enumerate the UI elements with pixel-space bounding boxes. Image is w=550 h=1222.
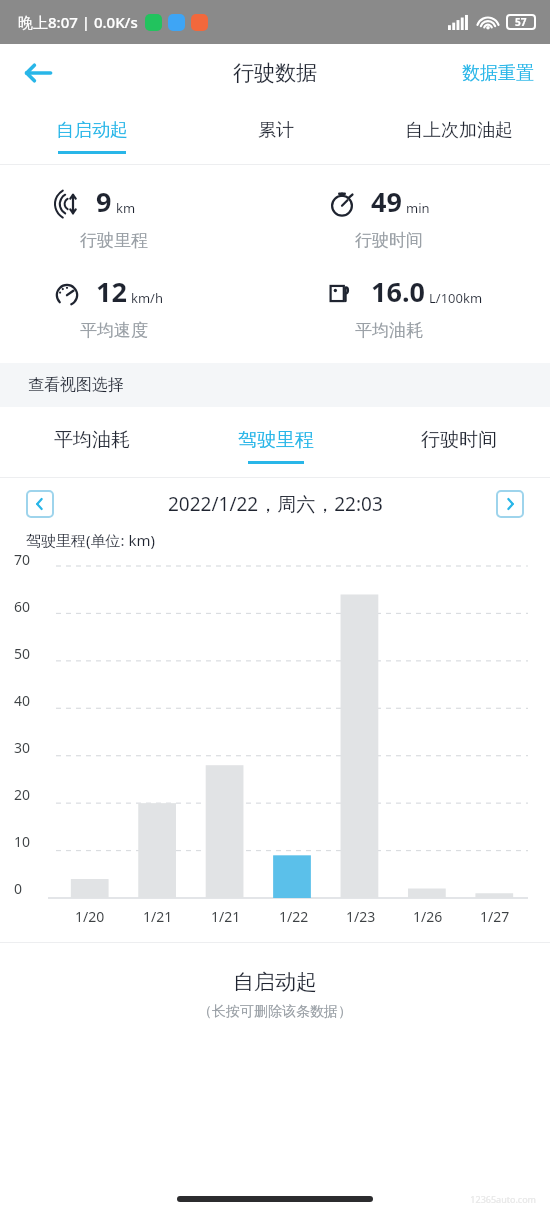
staticText: 1/22 [279, 907, 309, 926]
staticText: min [406, 199, 430, 217]
staticText: 50 [14, 644, 31, 663]
button[interactable]: Previous day [26, 490, 54, 518]
staticText: 数据重置 [462, 62, 534, 85]
staticText: 1/26 [413, 907, 443, 926]
staticText: 平均油耗 [355, 320, 423, 341]
staticText: 10 [14, 832, 31, 851]
staticText: 12365auto.com [470, 1193, 536, 1205]
staticText: 驾驶里程(单位: km) [26, 530, 155, 550]
staticText: 20 [14, 785, 31, 804]
staticText: 9 [96, 183, 112, 220]
button[interactable]: 数据重置 [462, 62, 534, 85]
button[interactable]: 平均油耗 [0, 407, 184, 477]
staticText: L/100km [429, 289, 483, 307]
button[interactable]: Back [14, 49, 62, 97]
staticText: 2022/1/22，周六，22:03 [168, 491, 383, 517]
staticText: 0 [14, 879, 23, 898]
staticText: km/h [131, 289, 163, 307]
staticText: 60 [14, 597, 31, 616]
staticText: 1/21 [211, 907, 241, 926]
staticText: 49 [371, 183, 402, 220]
button[interactable]: Next day [496, 490, 524, 518]
staticText: 自上次加油起 [405, 119, 513, 142]
staticText: 1/21 [143, 907, 173, 926]
staticText: 行驶时间 [421, 428, 497, 452]
button[interactable]: 行驶时间 [367, 407, 550, 477]
staticText: 40 [14, 691, 31, 710]
staticText: 行驶里程 [80, 230, 148, 251]
staticText: 行驶数据 [233, 60, 317, 86]
staticText: 70 [14, 550, 31, 569]
staticText: 30 [14, 738, 31, 757]
staticText: 16.0 [371, 273, 425, 310]
staticText: 累计 [258, 119, 294, 142]
staticText: 自启动起 [233, 969, 317, 995]
staticText: （长按可删除该条数据） [198, 1003, 352, 1021]
button[interactable]: 自上次加油起 [367, 102, 550, 164]
staticText: 晚上8:07 | 0.0K/s [18, 12, 138, 32]
staticText: km [116, 199, 136, 217]
staticText: 1/27 [480, 907, 510, 926]
button[interactable]: 自启动起 [0, 102, 184, 164]
staticText: 12 [96, 273, 127, 310]
staticText: 驾驶里程 [238, 428, 314, 452]
staticText: 1/20 [75, 907, 105, 926]
button[interactable]: 驾驶里程 [184, 407, 367, 477]
button[interactable]: 累计 [184, 102, 367, 164]
staticText: 57 [515, 15, 527, 29]
staticText: 自启动起 [56, 119, 128, 142]
staticText: 1/23 [346, 907, 376, 926]
staticText: 行驶时间 [355, 230, 423, 251]
staticText: 平均油耗 [54, 428, 130, 452]
staticText: 平均速度 [80, 320, 148, 341]
staticText: 查看视图选择 [28, 375, 124, 395]
